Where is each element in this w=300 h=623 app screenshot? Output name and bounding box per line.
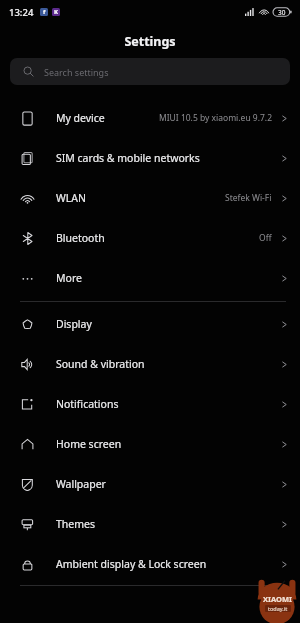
- staticText: Sound & vibration: [56, 357, 145, 371]
- button[interactable]: More: [0, 258, 300, 298]
- staticText: today.it: [268, 605, 288, 612]
- staticText: Settings: [124, 33, 176, 50]
- staticText: My device: [56, 111, 105, 125]
- staticText: Off: [259, 232, 272, 244]
- staticText: Search settings: [44, 66, 109, 78]
- staticText: 30: [278, 8, 286, 17]
- staticText: Display: [56, 317, 92, 331]
- staticText: Wallpaper: [56, 477, 106, 491]
- staticText: K: [54, 8, 58, 16]
- staticText: MIUI 10.5 by xiaomi.eu 9.7.2: [159, 112, 272, 124]
- button[interactable]: Themes: [0, 504, 300, 544]
- button[interactable]: Bluetooth: [0, 218, 300, 258]
- button[interactable]: Home screen: [0, 424, 300, 464]
- button[interactable]: Notifications: [0, 384, 300, 424]
- staticText: Themes: [56, 517, 96, 531]
- staticText: XIAOMI: [263, 594, 292, 604]
- button[interactable]: WLAN: [0, 178, 300, 218]
- staticText: f: [43, 8, 46, 16]
- button[interactable]: Display: [0, 304, 300, 344]
- button[interactable]: Sound & vibration: [0, 344, 300, 384]
- staticText: 13:24: [9, 6, 34, 19]
- staticText: More: [56, 271, 82, 285]
- button[interactable]: My device: [0, 98, 300, 138]
- staticText: Ambient display & Lock screen: [56, 557, 207, 571]
- staticText: SIM cards & mobile networks: [56, 151, 200, 165]
- button[interactable]: SIM cards & mobile networks: [0, 138, 300, 178]
- staticText: WLAN: [56, 191, 86, 205]
- staticText: Notifications: [56, 397, 119, 411]
- button[interactable]: Wallpaper: [0, 464, 300, 504]
- button[interactable]: Ambient display & Lock screen: [0, 544, 300, 584]
- staticText: Bluetooth: [56, 231, 105, 245]
- staticText: Home screen: [56, 437, 122, 451]
- button[interactable]: Search settings: [10, 58, 290, 85]
- staticText: Stefek Wi-Fi: [225, 192, 272, 204]
